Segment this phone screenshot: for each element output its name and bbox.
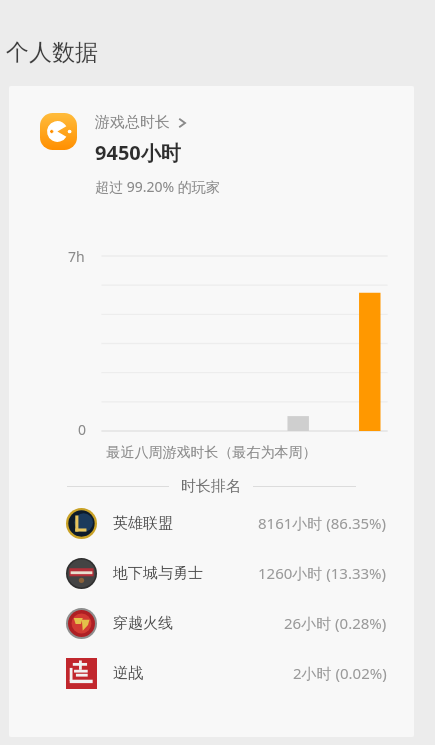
staticText: 2小时 (0.02%) bbox=[293, 663, 387, 683]
staticText: 时长排名 bbox=[181, 477, 241, 496]
staticText: 26小时 (0.28%) bbox=[284, 613, 387, 633]
staticText: 个人数据 bbox=[6, 38, 98, 67]
button[interactable]: 游戏总时长 bbox=[95, 113, 186, 132]
staticText: 最近八周游戏时长（最右为本周） bbox=[9, 444, 414, 462]
staticText: 8161小时 (86.35%) bbox=[258, 513, 387, 533]
staticText: 0 bbox=[78, 420, 87, 439]
staticText: 穿越火线 bbox=[113, 614, 173, 633]
staticText: 9450小时 bbox=[95, 139, 181, 166]
staticText: 英雄联盟 bbox=[113, 514, 173, 533]
staticText: 1260小时 (13.33%) bbox=[258, 563, 387, 583]
button[interactable]: 地下城与勇士 bbox=[9, 548, 414, 598]
staticText: 逆战 bbox=[113, 664, 143, 683]
staticText: 7h bbox=[68, 247, 85, 266]
button[interactable]: 游戏总时长 bbox=[40, 113, 77, 150]
staticText: 地下城与勇士 bbox=[113, 564, 203, 583]
button[interactable]: 逆战 bbox=[9, 648, 414, 698]
button[interactable]: 英雄联盟 bbox=[9, 498, 414, 548]
button[interactable]: 穿越火线 bbox=[9, 598, 414, 648]
staticText: 超过 99.20% 的玩家 bbox=[95, 177, 220, 196]
staticText: 游戏总时长 bbox=[95, 113, 170, 132]
